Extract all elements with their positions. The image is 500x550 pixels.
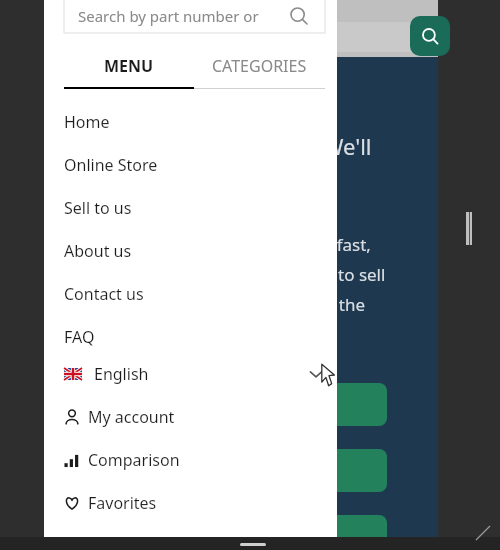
staticText: Online Store (64, 154, 158, 176)
staticText: Favorites (88, 492, 157, 514)
staticText: …got the (294, 293, 365, 316)
staticText: MENU (104, 55, 154, 77)
button[interactable]: English (44, 352, 337, 395)
button[interactable]: CATEGORIES (194, 50, 325, 82)
button[interactable]: About us (44, 229, 337, 272)
staticText: About us (64, 240, 132, 262)
staticText: …ant to sell (294, 263, 386, 286)
button[interactable]: Action (293, 383, 387, 426)
button[interactable]: FAQ (44, 315, 337, 358)
button[interactable]: Comparison (44, 438, 337, 481)
button[interactable]: Home (44, 100, 337, 143)
staticText: CATEGORIES (212, 55, 307, 77)
other: Search (289, 6, 309, 26)
staticText: FAQ (64, 326, 95, 348)
staticText: My account (88, 406, 175, 428)
staticText: Sell to us (64, 197, 132, 219)
button[interactable]: My account (44, 395, 337, 438)
staticText: Home (64, 111, 110, 133)
staticText: …nts fast, (294, 233, 371, 256)
staticText: Contact us (64, 283, 144, 305)
button[interactable]: MENU (64, 50, 194, 82)
button[interactable]: Sell to us (44, 186, 337, 229)
staticText: Comparison (88, 449, 180, 471)
staticText: Search by part number or (78, 6, 259, 26)
button[interactable]: Online Store (44, 143, 337, 186)
staticText: English (94, 363, 149, 385)
button[interactable]: Search by part number or (64, 0, 325, 33)
button[interactable]: Contact us (44, 272, 337, 315)
button[interactable]: Search (410, 16, 450, 56)
button[interactable]: Action (293, 515, 387, 550)
button[interactable]: Favorites (44, 481, 337, 524)
staticText: …. We'll (294, 131, 372, 161)
button[interactable]: Action (293, 449, 387, 492)
